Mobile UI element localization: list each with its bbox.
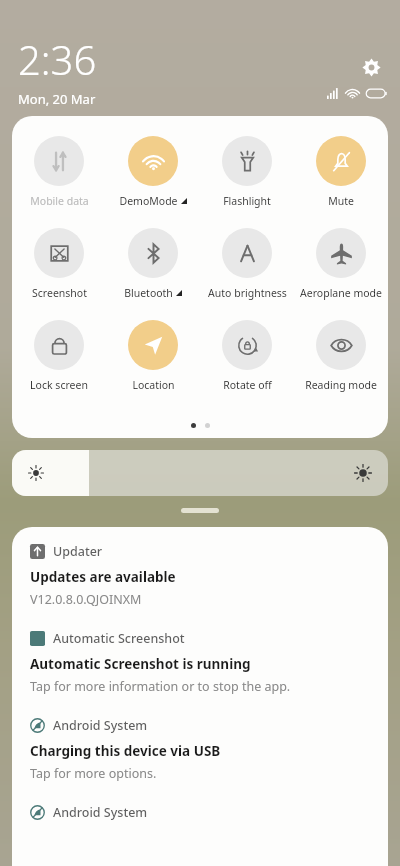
staticText: Mute	[328, 194, 354, 208]
button[interactable]: Android System	[30, 804, 370, 821]
button[interactable]: Settings	[356, 52, 386, 82]
staticText: Android System	[53, 804, 148, 821]
staticText: Reading mode	[305, 378, 377, 392]
staticText: Bluetooth	[124, 286, 173, 300]
staticText: Lock screen	[30, 378, 88, 392]
staticText: Location	[132, 378, 175, 392]
staticText: Mon, 20 Mar	[18, 90, 96, 108]
button[interactable]: Aeroplane mode	[294, 226, 388, 302]
button[interactable]: Android System	[30, 717, 370, 782]
button[interactable]: Mute	[294, 134, 388, 210]
staticText: Updates are available	[30, 568, 176, 586]
button[interactable]: Auto brightness	[200, 226, 294, 302]
staticText: Android System	[53, 717, 148, 734]
button[interactable]: DemoMode	[106, 134, 200, 210]
staticText: Flashlight	[223, 194, 271, 208]
staticText: Tap for more options.	[30, 765, 157, 782]
staticText: V12.0.8.0.QJOINXM	[30, 591, 142, 608]
button[interactable]: Automatic Screenshot	[30, 630, 370, 695]
button[interactable]: Updater	[30, 543, 370, 608]
button[interactable]: Mobile data	[12, 134, 106, 210]
button[interactable]: Reading mode	[294, 318, 388, 394]
staticText: Updater	[53, 543, 103, 560]
button[interactable]: Location	[106, 318, 200, 394]
button[interactable]: Brightness	[12, 450, 388, 496]
staticText: Auto brightness	[208, 286, 287, 300]
staticText: Aeroplane mode	[300, 286, 382, 300]
button[interactable]: Expand	[181, 508, 219, 513]
button[interactable]: Flashlight	[200, 134, 294, 210]
button[interactable]: Bluetooth	[106, 226, 200, 302]
staticText: Rotate off	[223, 378, 272, 392]
button[interactable]: Lock screen	[12, 318, 106, 394]
staticText: Tap for more information or to stop the …	[30, 678, 291, 695]
staticText: DemoMode	[119, 194, 178, 208]
staticText: 2:36	[18, 32, 97, 86]
staticText: Screenshot	[32, 286, 87, 300]
staticText: Charging this device via USB	[30, 742, 221, 760]
button[interactable]: Rotate off	[200, 318, 294, 394]
button[interactable]: Screenshot	[12, 226, 106, 302]
staticText: Automatic Screenshot	[53, 630, 185, 647]
staticText: Mobile data	[30, 194, 89, 208]
staticText: Automatic Screenshot is running	[30, 655, 251, 673]
